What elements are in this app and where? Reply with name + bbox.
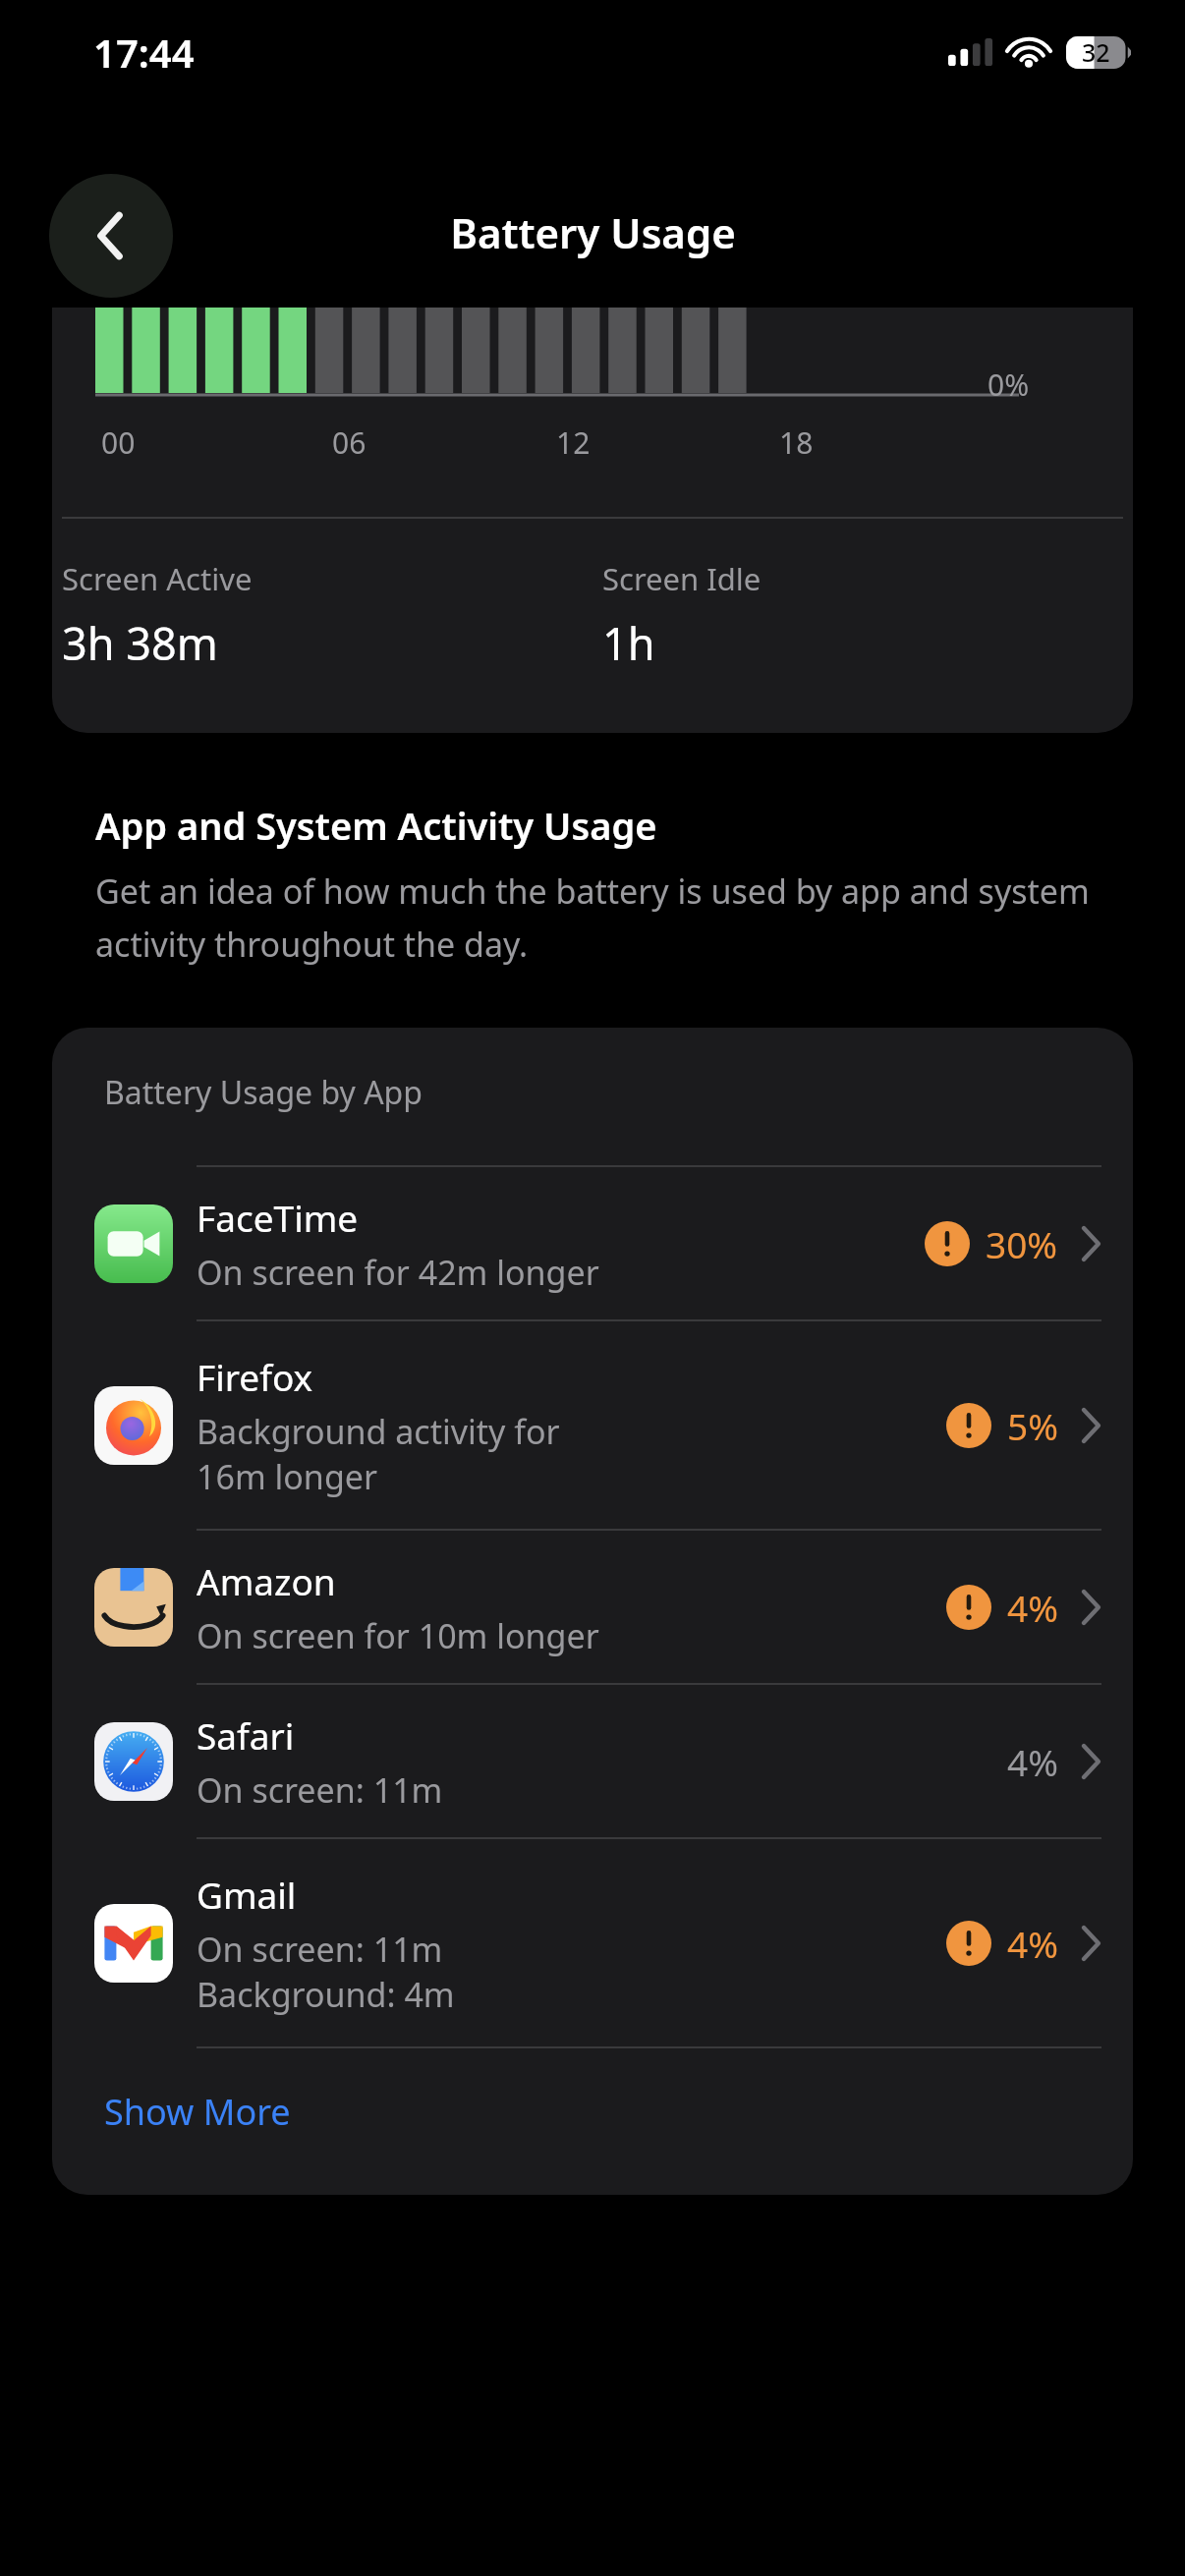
staticText: 17:44 xyxy=(93,26,195,79)
staticText: Screen Active xyxy=(62,558,253,599)
staticText: 32 xyxy=(1082,35,1110,69)
staticText: Battery Usage xyxy=(450,204,736,260)
staticText: 1h xyxy=(602,613,655,673)
staticText: FaceTime xyxy=(197,1193,359,1242)
button[interactable]: Firefox xyxy=(52,1321,1133,1529)
staticText: 0% xyxy=(987,364,1030,405)
staticText: 4% xyxy=(1007,1919,1058,1968)
staticText: On screen for 42m longer xyxy=(197,1250,599,1295)
staticText: 12 xyxy=(556,422,591,463)
staticText: 00 xyxy=(101,422,136,463)
staticText: Firefox xyxy=(197,1352,313,1401)
staticText: Battery Usage by App xyxy=(104,1071,423,1114)
staticText: Background: 4m xyxy=(197,1972,455,2017)
button[interactable]: Gmail xyxy=(52,1839,1133,2046)
staticText: Screen Idle xyxy=(602,558,762,599)
button[interactable]: Show More xyxy=(52,2048,1133,2195)
staticText: 16m longer xyxy=(197,1454,378,1499)
staticText: Amazon xyxy=(197,1556,336,1605)
staticText: Background activity for xyxy=(197,1409,560,1454)
staticText: 30% xyxy=(986,1219,1058,1268)
staticText: On screen: 11m xyxy=(197,1927,443,1972)
staticText: Safari xyxy=(197,1710,295,1760)
staticText: Get an idea of how much the battery is u… xyxy=(95,868,1090,967)
staticText: 3h 38m xyxy=(62,613,218,673)
staticText: 4% xyxy=(1007,1737,1058,1786)
staticText: On screen: 11m xyxy=(197,1767,443,1813)
staticText: Gmail xyxy=(197,1870,297,1919)
staticText: 06 xyxy=(332,422,367,463)
staticText: 4% xyxy=(1007,1583,1058,1632)
staticText: App and System Activity Usage xyxy=(95,800,657,851)
staticText: Show More xyxy=(104,2088,291,2136)
button[interactable]: FaceTime xyxy=(52,1167,1133,1319)
staticText: 18 xyxy=(779,422,814,463)
staticText: 5% xyxy=(1007,1401,1058,1450)
button[interactable]: Amazon xyxy=(52,1531,1133,1683)
button[interactable]: Back xyxy=(49,174,173,298)
button[interactable]: Safari xyxy=(52,1685,1133,1837)
staticText: On screen for 10m longer xyxy=(197,1613,599,1658)
